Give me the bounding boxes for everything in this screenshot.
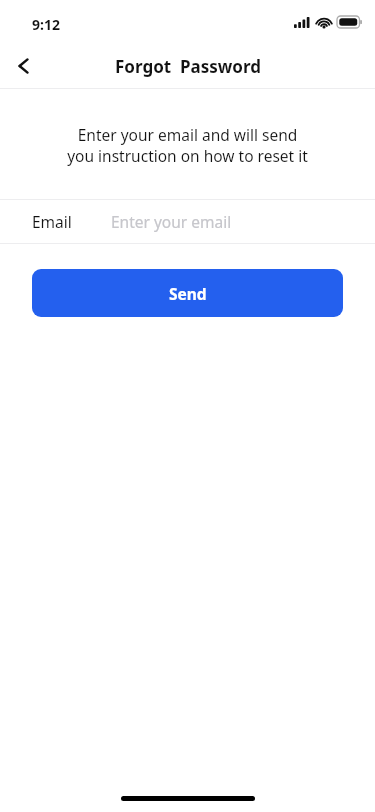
button[interactable]: Send (32, 269, 343, 317)
staticText: Forgot Password (115, 55, 261, 78)
staticText: Send (169, 283, 207, 304)
staticText: 9:12 (32, 15, 60, 34)
button[interactable]: Back (4, 46, 44, 86)
button[interactable]: Email (0, 200, 375, 243)
staticText: Email (32, 211, 72, 232)
staticText: Enter your email and will send you instr… (28, 124, 347, 167)
staticText: Enter your email (111, 211, 232, 232)
